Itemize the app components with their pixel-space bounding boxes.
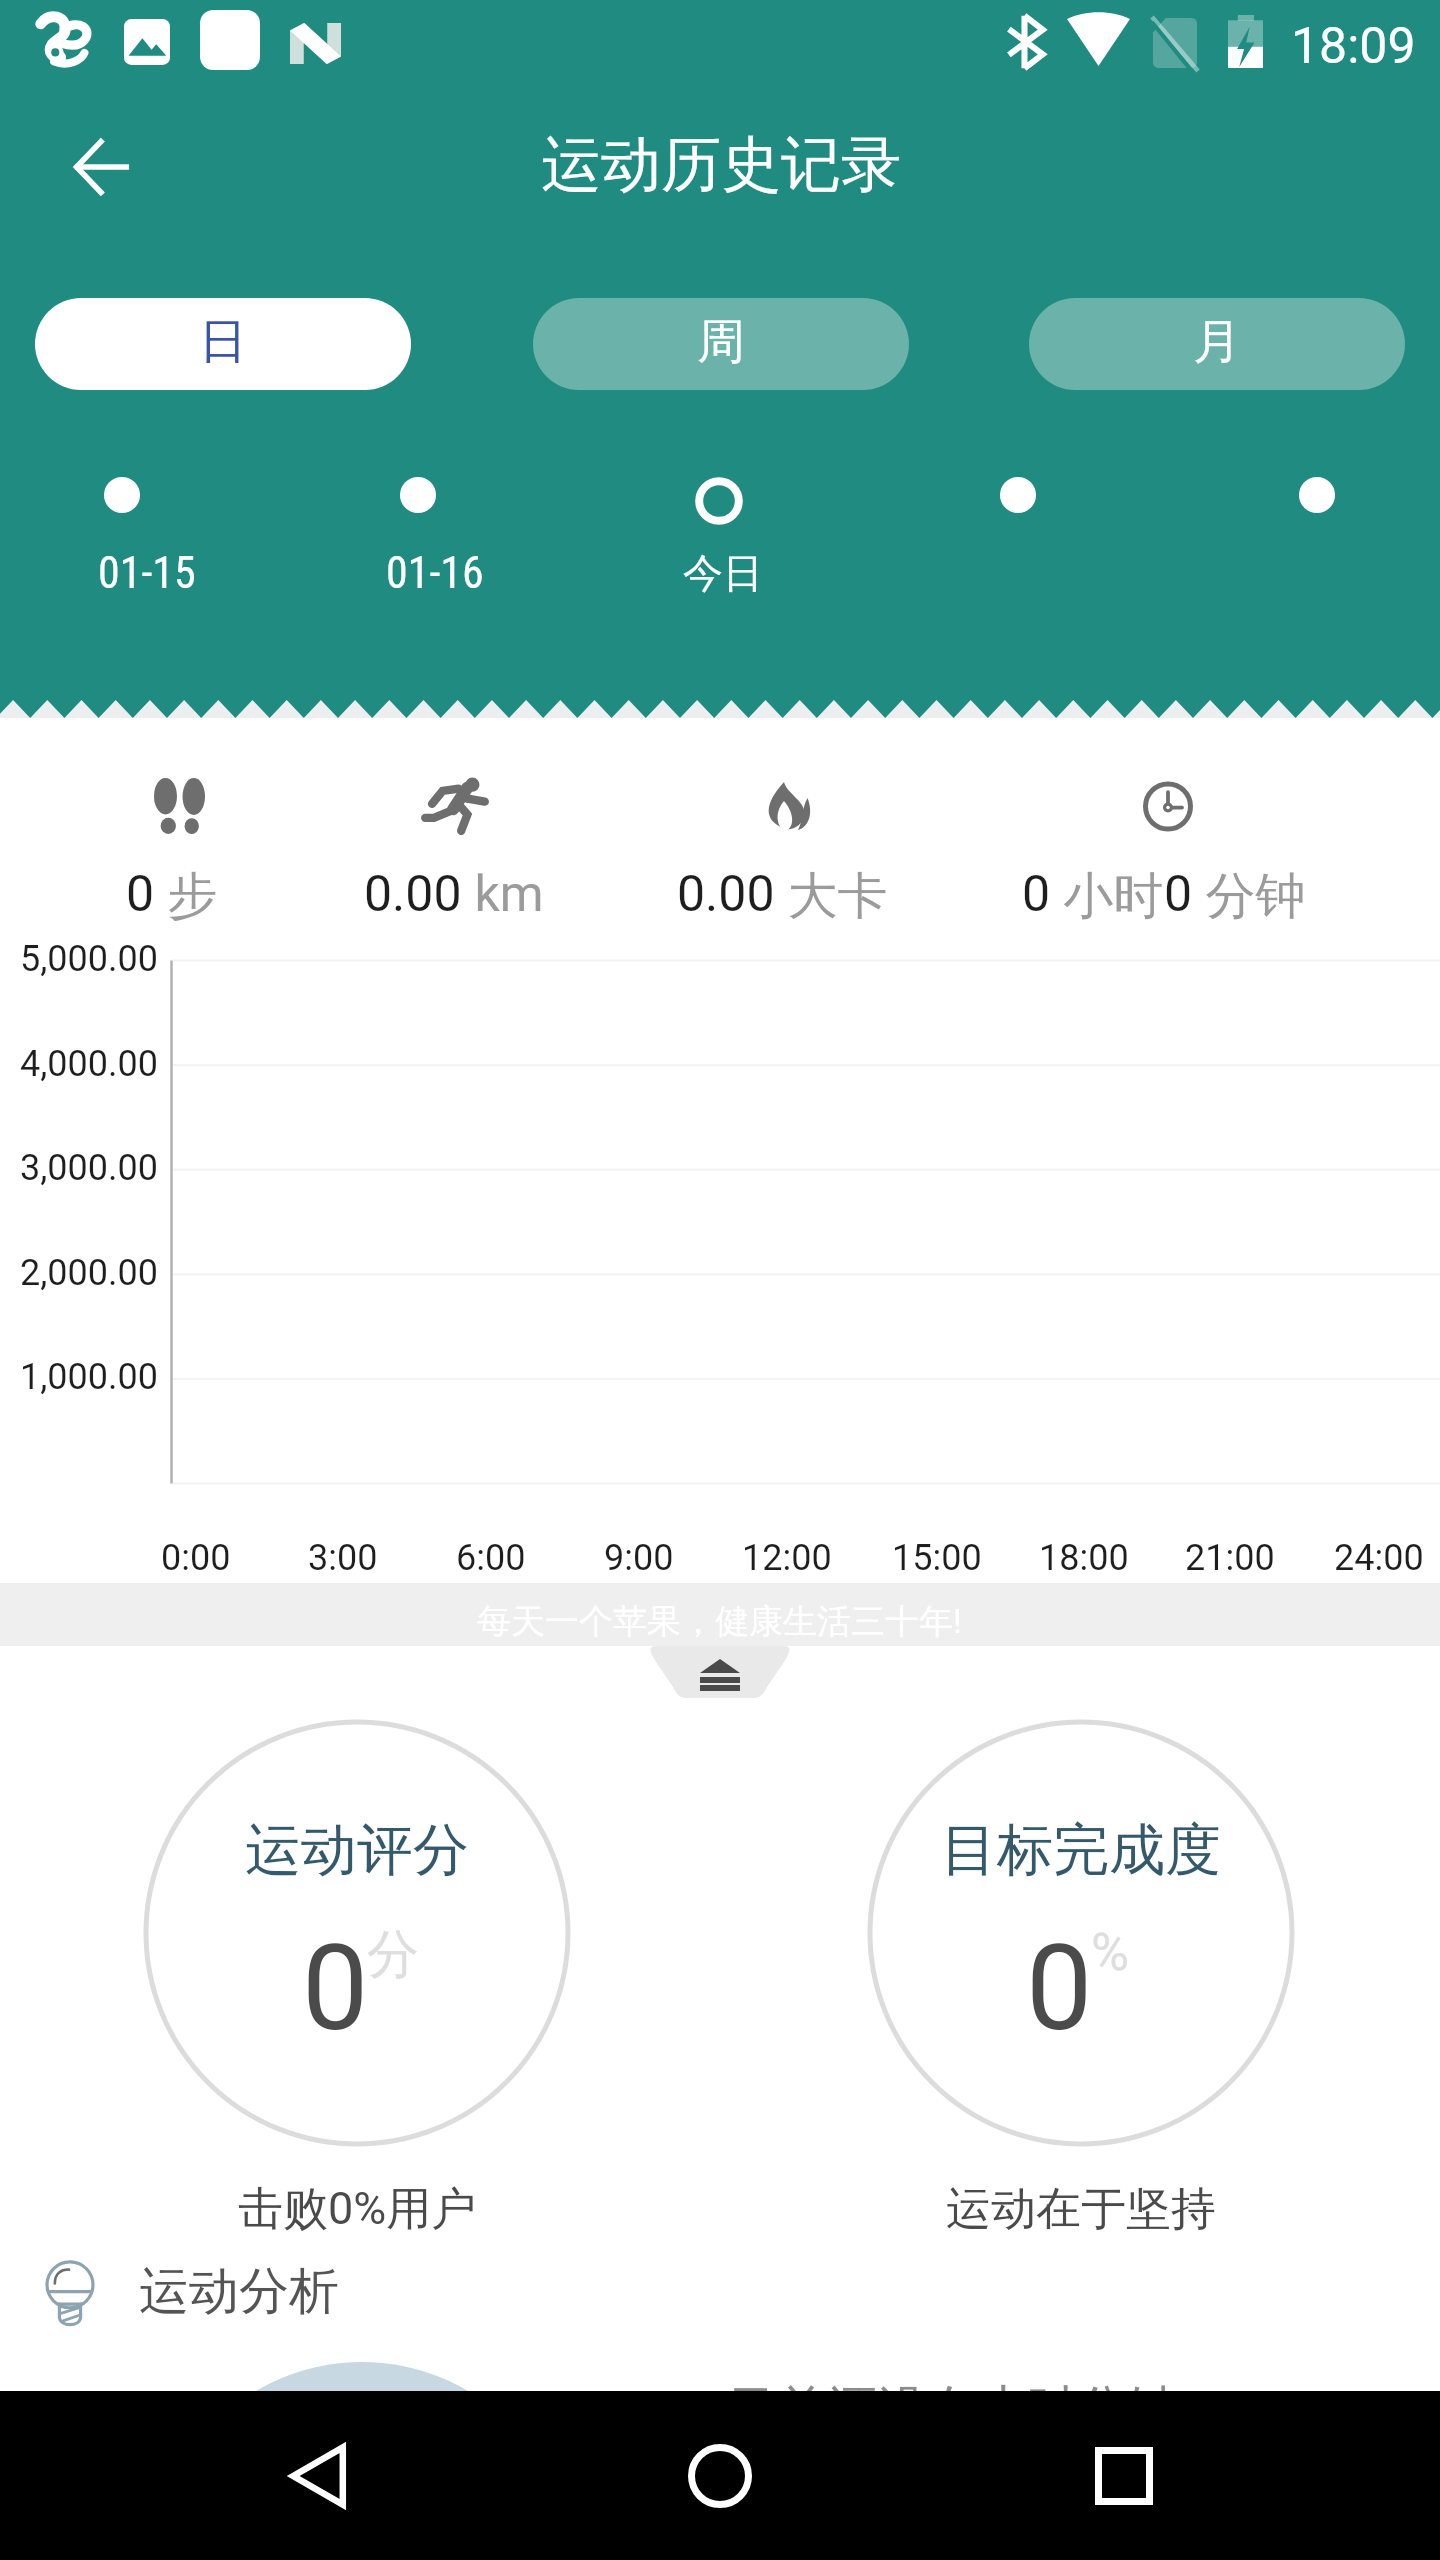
staticText: 0	[1022, 865, 1051, 924]
staticText: 步	[155, 865, 218, 928]
staticText: 运动历史记录	[541, 127, 901, 203]
staticText: 0	[1164, 865, 1193, 924]
staticText: 大卡	[775, 865, 888, 928]
staticText: 01-15	[98, 547, 196, 599]
button[interactable]: 日	[35, 298, 411, 390]
button[interactable]: Upcoming day	[1242, 468, 1392, 598]
staticText: 01-16	[386, 547, 484, 599]
staticText: km	[462, 865, 544, 924]
button[interactable]: Back	[248, 2391, 388, 2560]
staticText: 今日	[683, 548, 763, 598]
staticText: 0:00	[161, 1537, 231, 1579]
staticText: 0.00	[364, 865, 462, 924]
staticText: 分	[367, 1922, 419, 1988]
staticText: 24:00	[1334, 1537, 1424, 1579]
staticText: 18:00	[1039, 1537, 1129, 1579]
staticText: 0	[126, 865, 155, 924]
staticText: 击败0%用户	[238, 2181, 477, 2238]
button[interactable]: 今日	[643, 468, 793, 598]
staticText: 12:00	[742, 1537, 832, 1579]
staticText: %	[1091, 1922, 1130, 1983]
button[interactable]: Home	[650, 2391, 790, 2560]
staticText: 21:00	[1185, 1537, 1275, 1579]
staticText: 2,000.00	[20, 1252, 158, 1294]
staticText: 18:09	[1291, 17, 1416, 76]
staticText: 分钟	[1193, 865, 1306, 928]
button[interactable]: 周	[533, 298, 909, 390]
staticText: 0	[1026, 1920, 1093, 2058]
staticText: 9:00	[604, 1537, 674, 1579]
staticText: 目标完成度	[941, 1815, 1221, 1886]
button[interactable]: Upcoming day	[943, 468, 1093, 598]
staticText: 日	[199, 312, 247, 372]
staticText: 3:00	[308, 1537, 378, 1579]
button[interactable]: 01-15	[47, 468, 197, 598]
button[interactable]: 运动评分	[143, 1719, 571, 2147]
staticText: 6:00	[456, 1537, 526, 1579]
staticText: 运动分析	[139, 2260, 339, 2323]
button[interactable]: Expand details	[648, 1646, 792, 1698]
staticText: 15:00	[892, 1537, 982, 1579]
staticText: 1,000.00	[20, 1356, 158, 1398]
staticText: 运动评分	[245, 1815, 469, 1886]
staticText: 目前还没有小时分钟	[727, 2378, 1177, 2419]
button[interactable]: 月	[1029, 298, 1405, 390]
button[interactable]: 运动分析	[0, 2243, 1440, 2343]
staticText: 0.00	[677, 865, 775, 924]
button[interactable]: Recents	[1054, 2391, 1194, 2560]
staticText: 小时	[1051, 865, 1164, 928]
staticText: 月	[1193, 312, 1241, 372]
staticText: 5,000.00	[20, 938, 158, 980]
staticText: 3,000.00	[20, 1147, 158, 1189]
button[interactable]: Back	[46, 111, 158, 223]
staticText: 每天一个苹果，健康生活三十年!	[477, 1600, 962, 1643]
staticText: 运动在于坚持	[946, 2181, 1216, 2238]
button[interactable]: 目标完成度	[867, 1719, 1295, 2147]
staticText: 周	[697, 312, 745, 372]
staticText: 4,000.00	[20, 1043, 158, 1085]
staticText: 0	[302, 1920, 369, 2058]
button[interactable]: 01-16	[343, 468, 493, 598]
